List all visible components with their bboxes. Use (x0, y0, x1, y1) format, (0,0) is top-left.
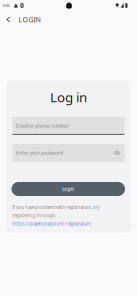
button[interactable]: Enter your password (12, 144, 124, 162)
button[interactable]: Login (11, 182, 125, 196)
staticText: Enter your password (16, 150, 63, 156)
button[interactable]: https://player.tv/account/registration (12, 221, 124, 227)
staticText: 9:00 (3, 3, 10, 8)
button[interactable]: Email or phone number (12, 117, 124, 135)
staticText: Login (62, 186, 74, 192)
button[interactable]: LOGIN (0, 11, 46, 27)
staticText: LOGIN (18, 15, 40, 24)
staticText: If you have problems with registration, … (12, 204, 99, 210)
staticText: https://player.tv/account/registration (12, 221, 91, 227)
staticText: registering through. (12, 213, 56, 219)
staticText: Log in (50, 88, 87, 106)
staticText: Email or phone number (16, 123, 69, 129)
